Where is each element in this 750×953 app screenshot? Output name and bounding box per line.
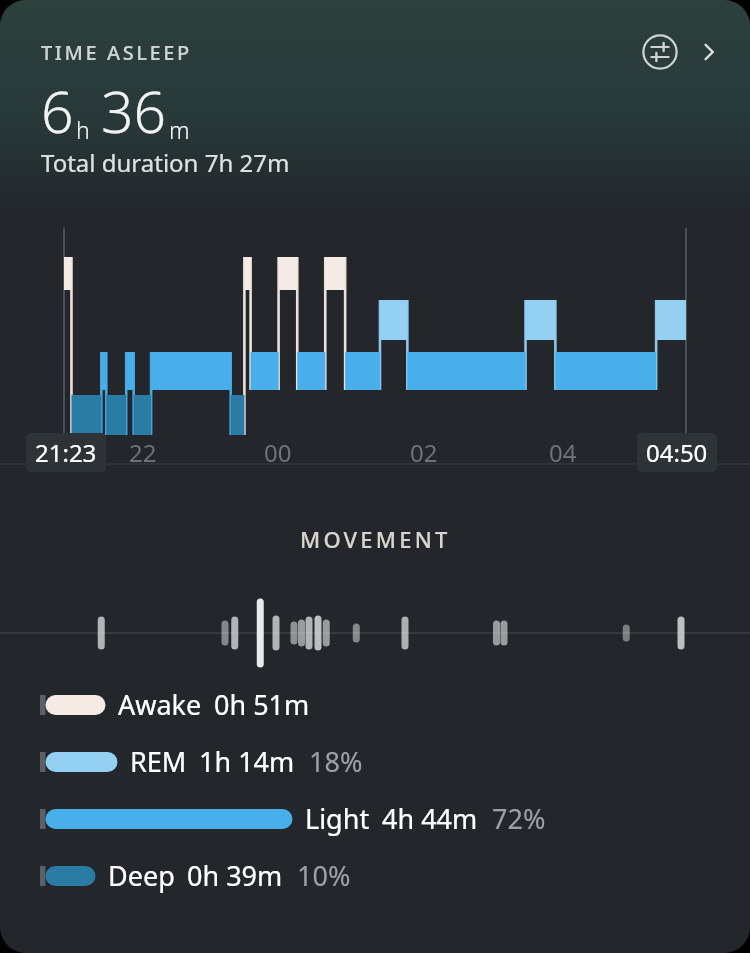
button[interactable]: Open sleep details (688, 32, 728, 72)
staticText: 04:50 (646, 436, 708, 469)
staticText: 02 (410, 436, 438, 469)
button[interactable]: Awake (40, 686, 750, 723)
staticText: TIME ASLEEP (41, 39, 192, 66)
staticText: m (169, 114, 190, 145)
staticText: MOVEMENT (300, 524, 451, 554)
button[interactable]: Light (40, 800, 750, 837)
staticText: Total duration 7h 27m (41, 146, 290, 179)
staticText: 1h 14m (199, 743, 295, 780)
staticText: 4h 44m (382, 800, 478, 837)
staticText: 04 (549, 436, 577, 469)
staticText: 6 (41, 72, 74, 150)
staticText: 36 (101, 72, 167, 150)
staticText: 18% (309, 743, 363, 780)
staticText: 72% (492, 800, 546, 837)
staticText: Light (305, 800, 370, 837)
button[interactable]: Adjust sleep stages (638, 30, 682, 74)
staticText: 00 (264, 436, 292, 469)
staticText: 0h 39m (187, 857, 283, 894)
staticText: Awake (118, 686, 202, 723)
staticText: 10% (297, 857, 351, 894)
staticText: Deep (108, 857, 175, 894)
staticText: h (76, 114, 90, 145)
button[interactable]: REM (40, 743, 750, 780)
staticText: 22 (129, 436, 157, 469)
staticText: REM (130, 743, 187, 780)
staticText: 0h 51m (214, 686, 310, 723)
button[interactable]: Deep (40, 857, 750, 894)
staticText: 21:23 (35, 436, 97, 469)
